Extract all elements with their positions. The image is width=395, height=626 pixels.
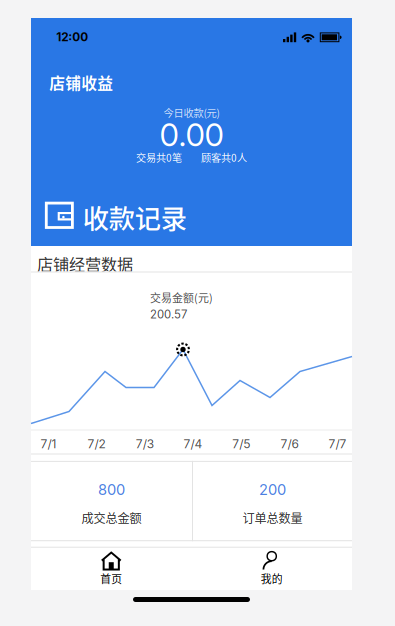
- staticText: 7/3: [136, 436, 154, 451]
- button[interactable]: 800: [31, 461, 192, 541]
- staticText: 首页: [100, 571, 122, 586]
- staticText: 我的: [261, 571, 283, 586]
- staticText: 7/7: [329, 436, 347, 451]
- staticText: 交易共0笔: [136, 150, 182, 165]
- button[interactable]: 200: [193, 461, 352, 541]
- staticText: 交易金额(元): [150, 289, 213, 305]
- staticText: 12:00: [56, 30, 88, 44]
- staticText: 7/2: [88, 436, 106, 451]
- button[interactable]: 首页: [31, 547, 191, 590]
- staticText: 7/4: [183, 436, 202, 451]
- staticText: 7/5: [232, 436, 250, 451]
- staticText: 7/1: [40, 436, 56, 451]
- staticText: 200.57: [150, 307, 187, 321]
- staticText: 店铺收益: [49, 71, 113, 94]
- staticText: 0.00: [159, 116, 223, 154]
- button[interactable]: 收款记录: [31, 196, 352, 246]
- staticText: 800: [98, 481, 125, 499]
- button[interactable]: 我的: [191, 547, 352, 590]
- staticText: 200: [259, 481, 286, 499]
- staticText: 店铺经营数据: [37, 252, 133, 275]
- staticText: 顾客共0人: [201, 150, 247, 165]
- staticText: 订单总数量: [242, 509, 302, 526]
- staticText: 成交总金额: [81, 509, 141, 526]
- staticText: 7/6: [280, 436, 298, 451]
- staticText: 今日收款(元): [163, 105, 219, 120]
- staticText: 收款记录: [83, 198, 187, 236]
